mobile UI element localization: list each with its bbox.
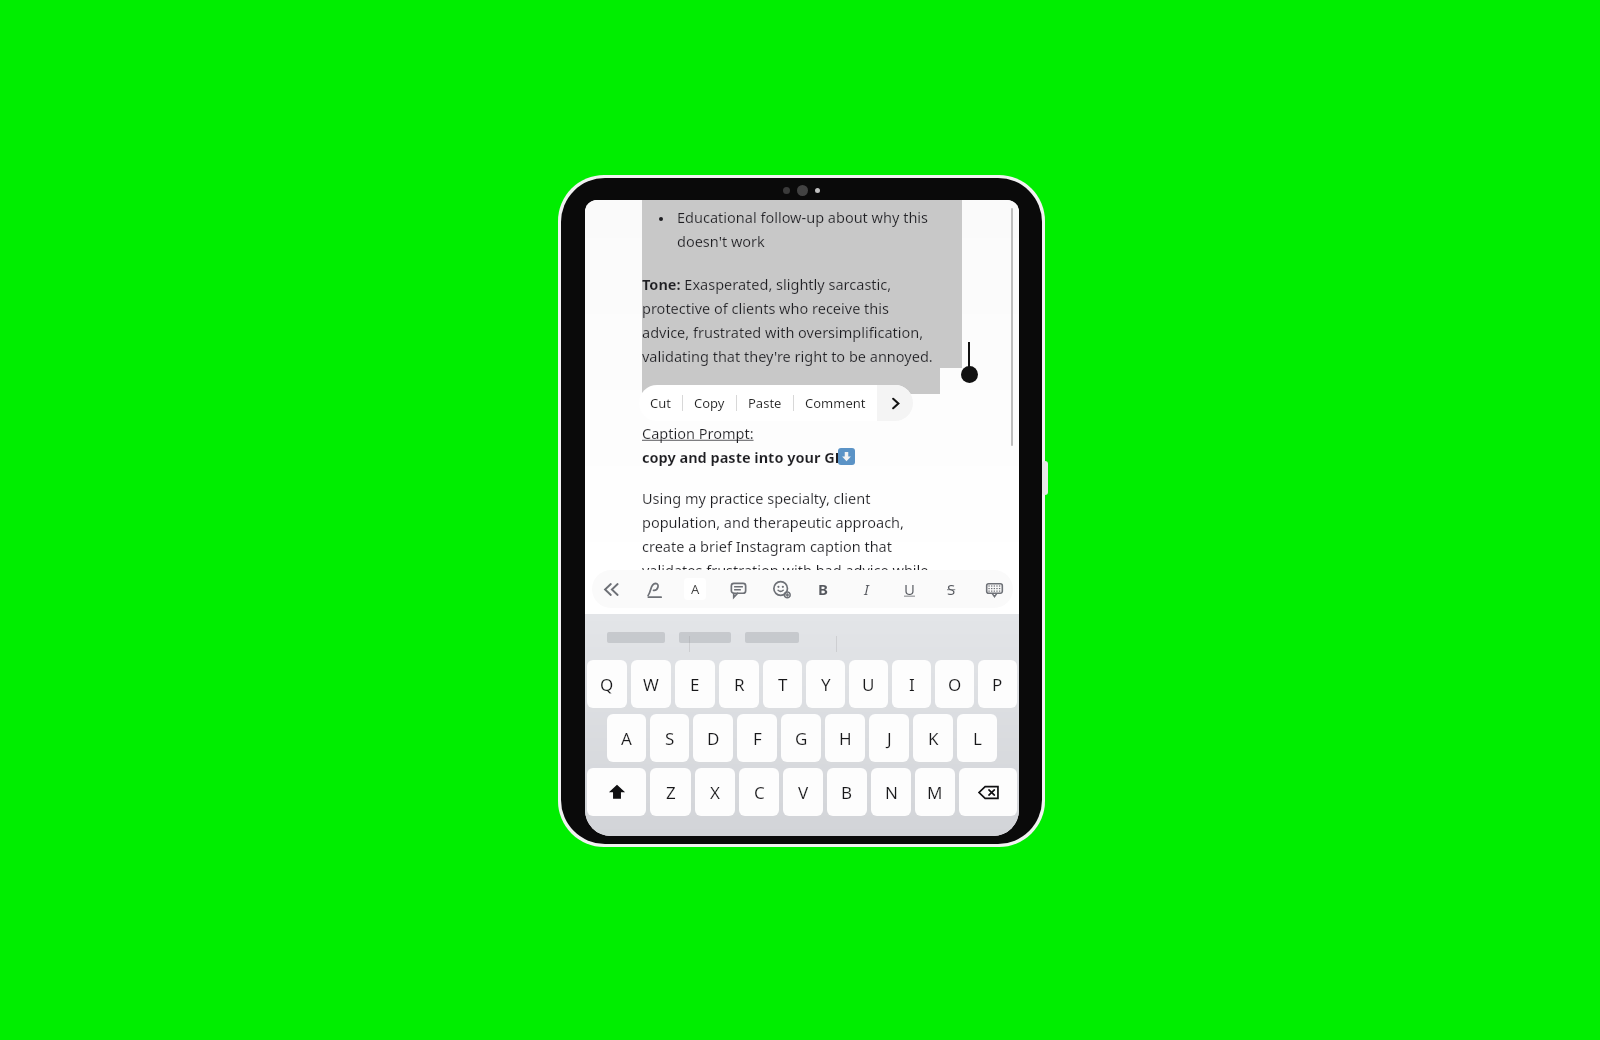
button[interactable]: Copy (683, 385, 736, 421)
staticText: J (887, 727, 892, 750)
staticText: M (927, 781, 943, 804)
staticText: advice, frustrated with oversimplificati… (642, 322, 924, 342)
staticText: Comment (805, 394, 866, 412)
button[interactable]: Z (650, 768, 691, 816)
staticText: create a brief Instagram caption that (642, 536, 892, 556)
staticText: I (864, 579, 869, 599)
staticText: validates frustration with bad advice wh… (642, 560, 929, 580)
staticText: V (798, 781, 809, 804)
staticText: Cut (650, 394, 671, 412)
button[interactable]: L (957, 714, 997, 762)
button[interactable]: M (915, 768, 955, 816)
button[interactable]: Q (587, 660, 627, 708)
staticText: E (690, 673, 700, 696)
button[interactable]: Clear formatting (640, 576, 666, 602)
button[interactable]: S (650, 714, 689, 762)
staticText: copy and paste into your GPT (642, 447, 853, 467)
staticText: Y (821, 673, 831, 696)
staticText: H (839, 727, 852, 750)
staticText: B (818, 579, 828, 599)
button[interactable]: Keyboard (981, 576, 1007, 602)
button[interactable]: Collapse toolbar (597, 576, 623, 602)
staticText: I (909, 673, 915, 696)
staticText: G (795, 727, 808, 750)
button[interactable]: Text style (682, 576, 708, 602)
button[interactable]: More options (877, 385, 913, 421)
button[interactable]: Paste (737, 385, 793, 421)
button[interactable]: K (913, 714, 953, 762)
button[interactable]: Underline (896, 576, 922, 602)
staticText: U (904, 579, 915, 599)
staticText: Copy (694, 394, 725, 412)
button[interactable]: H (825, 714, 865, 762)
staticText: R (734, 673, 745, 696)
button[interactable]: Cut (639, 385, 682, 421)
staticText: population, and therapeutic approach, (642, 512, 904, 532)
staticText: U (862, 673, 875, 696)
button[interactable]: D (693, 714, 733, 762)
staticText: K (928, 727, 939, 750)
button[interactable]: U (849, 660, 888, 708)
button[interactable]: O (935, 660, 974, 708)
staticText: W (643, 673, 659, 696)
button[interactable]: T (763, 660, 802, 708)
button[interactable]: W (631, 660, 671, 708)
staticText: F (753, 727, 762, 750)
staticText: Z (666, 781, 676, 804)
staticText: C (754, 781, 765, 804)
button[interactable]: I (892, 660, 931, 708)
button[interactable]: E (675, 660, 715, 708)
staticText: B (841, 781, 853, 804)
staticText: P (992, 673, 1003, 696)
staticText: Caption Prompt: (642, 423, 754, 443)
staticText: doesn't work (677, 231, 765, 251)
staticText: A (691, 580, 700, 598)
button[interactable]: Backspace (959, 768, 1017, 816)
button[interactable]: N (871, 768, 911, 816)
staticText: N (885, 781, 898, 804)
button[interactable]: V (783, 768, 823, 816)
staticText: Educational follow-up about why this (677, 207, 929, 227)
staticText: Tone: Exasperated, slightly sarcastic, (642, 274, 892, 294)
staticText: T (778, 673, 788, 696)
button[interactable]: Y (806, 660, 845, 708)
button[interactable]: J (869, 714, 909, 762)
staticText: D (707, 727, 720, 750)
staticText: S (947, 579, 956, 599)
button[interactable]: G (781, 714, 821, 762)
staticText: X (710, 781, 720, 804)
button[interactable]: Strikethrough (938, 576, 964, 602)
button[interactable]: Italic (853, 576, 879, 602)
staticText: Q (600, 673, 614, 696)
button[interactable]: Comment (794, 385, 877, 421)
button[interactable]: X (695, 768, 735, 816)
staticText: validating that they're right to be anno… (642, 346, 933, 366)
button[interactable]: P (978, 660, 1017, 708)
button[interactable]: F (737, 714, 777, 762)
button[interactable]: Bold (810, 576, 836, 602)
button[interactable]: C (739, 768, 779, 816)
button[interactable]: B (827, 768, 867, 816)
staticText: protective of clients who receive this (642, 298, 889, 318)
staticText: A (621, 727, 632, 750)
button[interactable]: A (607, 714, 646, 762)
staticText: S (665, 727, 675, 750)
staticText: O (948, 673, 962, 696)
button[interactable]: Shift (587, 768, 646, 816)
staticText: L (973, 727, 982, 750)
button[interactable]: Comment (725, 576, 751, 602)
staticText: Paste (748, 394, 782, 412)
button[interactable]: R (719, 660, 759, 708)
staticText: Using my practice specialty, client (642, 488, 871, 508)
button[interactable]: Add emoji (768, 576, 794, 602)
